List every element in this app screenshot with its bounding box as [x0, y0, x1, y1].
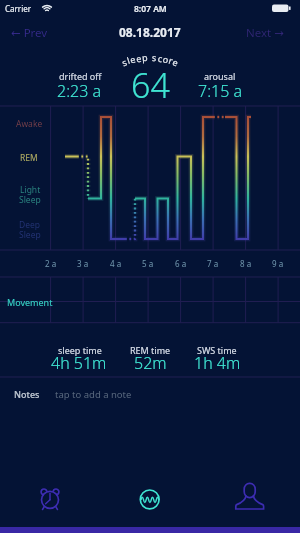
staticText: Light [20, 184, 41, 196]
staticText: 4 a [110, 258, 122, 269]
staticText: c [157, 52, 164, 64]
staticText: Movement [7, 296, 53, 308]
staticText: 52m [134, 352, 167, 374]
staticText: e [171, 55, 181, 69]
button[interactable] [130, 480, 170, 516]
staticText: Awake [16, 118, 43, 130]
staticText: drifted off [59, 70, 102, 82]
staticText: SWS time [197, 344, 237, 356]
staticText: 8 a [240, 258, 252, 269]
staticText: 9 a [272, 258, 284, 269]
staticText: Next → [246, 25, 284, 41]
button[interactable] [230, 480, 270, 516]
staticText: 3 a [77, 258, 89, 269]
staticText: 7:15 a [198, 80, 243, 102]
staticText: 2 a [45, 258, 57, 269]
staticText: p [142, 51, 148, 63]
button[interactable]: ← Prev [11, 25, 61, 41]
staticText: l [125, 54, 132, 66]
staticText: ← Prev [11, 25, 48, 41]
staticText: Carrier [5, 3, 32, 14]
staticText: s [120, 55, 129, 68]
staticText: o [162, 52, 170, 65]
staticText: tap to add a note [55, 388, 132, 401]
staticText: Deep [19, 219, 41, 231]
staticText: 6 a [175, 258, 187, 269]
staticText: 1h 4m [194, 352, 241, 374]
staticText: 7 a [207, 258, 219, 269]
staticText: 64 [131, 62, 170, 108]
staticText: sleep time [58, 344, 102, 356]
staticText: Sleep [19, 229, 41, 241]
staticText: 8:07 AM [134, 3, 167, 15]
staticText: Sleep [19, 194, 41, 206]
staticText: 5 a [142, 258, 154, 269]
staticText: REM time [130, 344, 171, 356]
staticText: s [152, 51, 157, 63]
staticText: Notes [14, 388, 40, 400]
staticText: e [135, 52, 143, 64]
button[interactable]: Notes [0, 380, 300, 404]
staticText: 08.18.2017 [119, 24, 181, 40]
staticText: 2:23 a [57, 80, 102, 102]
staticText: 4h 51m [51, 352, 107, 374]
staticText: arousal [204, 70, 236, 82]
button[interactable] [30, 480, 70, 516]
staticText: e [129, 52, 137, 66]
staticText: REM [20, 152, 38, 164]
button[interactable]: Next → [232, 25, 284, 41]
staticText: r [167, 54, 175, 66]
